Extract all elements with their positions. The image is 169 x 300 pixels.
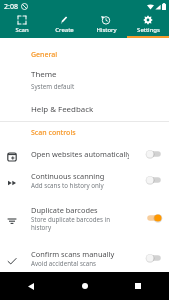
staticText: Help & Feedback [31, 104, 94, 115]
staticText: System default [31, 82, 75, 90]
staticText: Avoid accidental scans [31, 259, 97, 267]
staticText: Create [55, 26, 74, 34]
staticText: Open websites automatically [31, 149, 129, 159]
staticText: 2:08 [4, 2, 18, 12]
button[interactable]: Theme [0, 69, 169, 90]
staticText: Scan controls [31, 128, 76, 138]
button[interactable] [145, 174, 163, 186]
button[interactable]: History [85, 13, 127, 36]
button[interactable]: Settings [127, 13, 169, 36]
button[interactable] [145, 252, 163, 264]
button[interactable]: Scan [0, 13, 43, 36]
staticText: Scan [15, 26, 29, 34]
button[interactable]: Home [76, 277, 94, 295]
button[interactable]: Continuous scanning [0, 165, 169, 194]
staticText: Confirm scans manually [31, 249, 115, 259]
staticText: Add scans to history only [31, 181, 104, 189]
staticText: Store duplicate barcodes in history [31, 215, 129, 231]
button[interactable] [145, 148, 163, 160]
staticText: History [96, 26, 117, 34]
button[interactable]: Confirm scans manually [0, 242, 169, 274]
button[interactable]: Open websites automatically [0, 142, 169, 165]
button[interactable]: Duplicate barcodes [0, 194, 169, 242]
staticText: General [31, 50, 58, 60]
button[interactable]: Create [43, 13, 85, 36]
staticText: Settings [137, 26, 160, 34]
staticText: Continuous scanning [31, 171, 105, 181]
button[interactable]: Back [22, 277, 40, 295]
button[interactable] [145, 212, 163, 224]
staticText: Theme [31, 69, 57, 80]
button[interactable]: Recents [129, 277, 147, 295]
button[interactable]: Help & Feedback [0, 104, 169, 115]
staticText: Duplicate barcodes [31, 205, 98, 215]
